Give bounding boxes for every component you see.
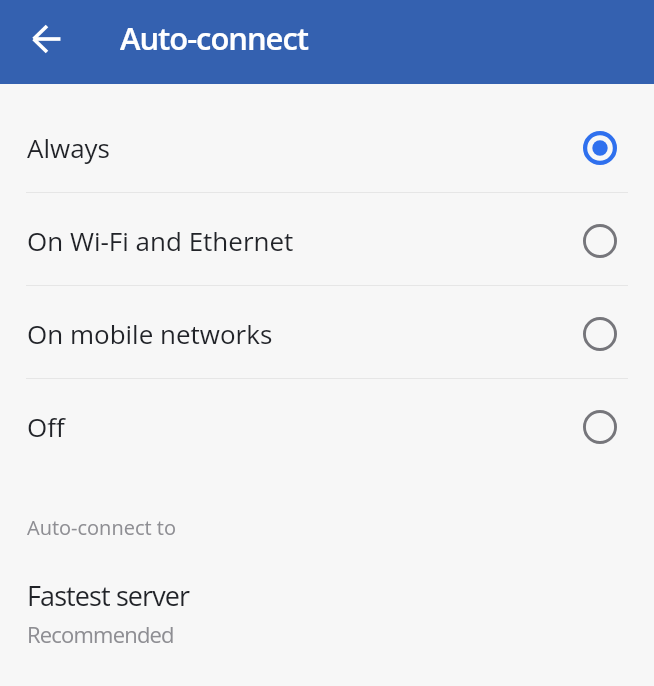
staticText: On mobile networks bbox=[27, 316, 583, 351]
button[interactable]: Back bbox=[17, 9, 77, 69]
staticText: Auto-connect bbox=[120, 17, 308, 59]
button[interactable]: On mobile networks bbox=[0, 286, 654, 379]
staticText: Recommended bbox=[27, 619, 174, 649]
button[interactable]: On Wi-Fi and Ethernet bbox=[0, 193, 654, 286]
staticText: Auto-connect to bbox=[27, 514, 176, 541]
staticText: On Wi-Fi and Ethernet bbox=[27, 223, 583, 258]
button[interactable]: Fastest server bbox=[0, 577, 654, 649]
staticText: Fastest server bbox=[27, 577, 190, 614]
staticText: Always bbox=[27, 130, 583, 165]
button[interactable]: Always bbox=[0, 100, 654, 193]
button[interactable]: Off bbox=[0, 379, 654, 472]
staticText: Off bbox=[27, 409, 583, 444]
